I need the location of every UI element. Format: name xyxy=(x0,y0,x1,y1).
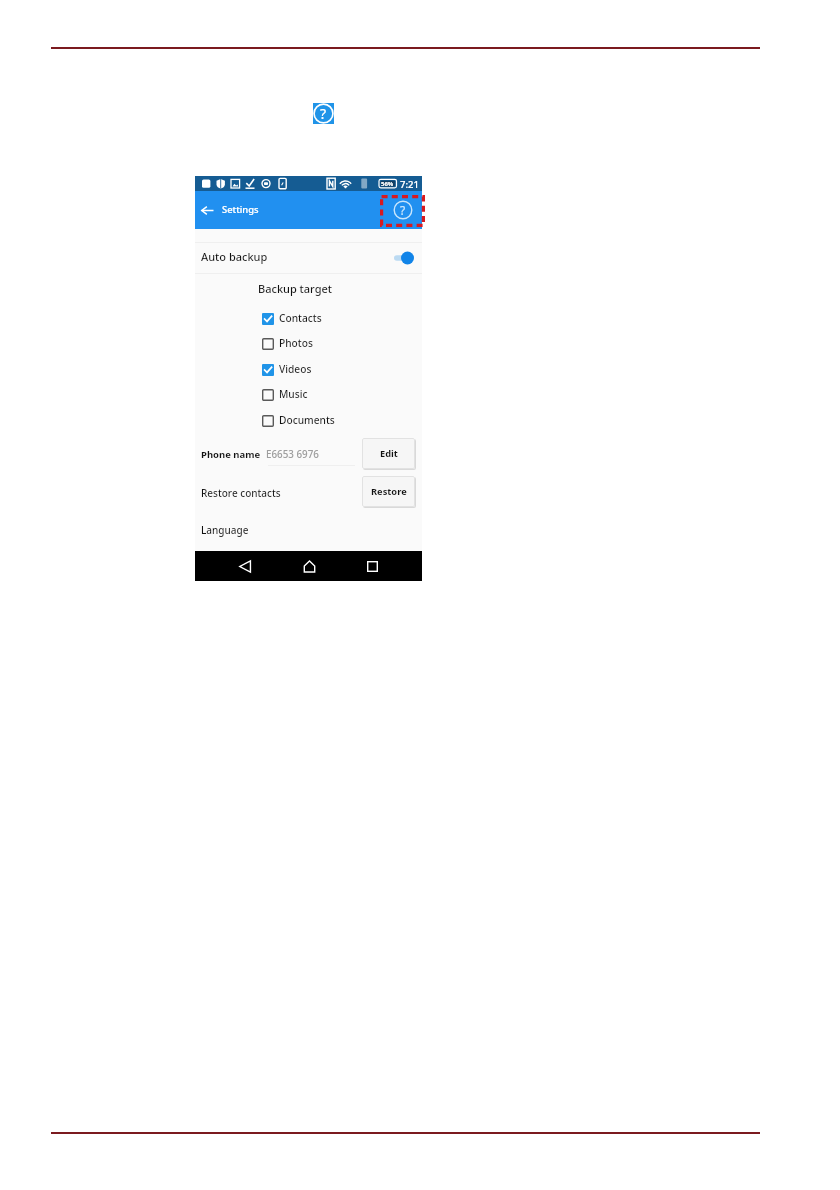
button[interactable]: Photos xyxy=(195,331,422,356)
staticText: Contacts xyxy=(279,311,322,325)
button[interactable]: Edit xyxy=(362,438,415,469)
button[interactable]: Home xyxy=(295,552,323,580)
button[interactable]: Help xyxy=(313,103,334,124)
staticText: Photos xyxy=(279,336,313,350)
staticText: Music xyxy=(279,387,308,401)
staticText: Restore xyxy=(371,485,407,498)
button[interactable]: Contacts xyxy=(195,306,422,331)
staticText: ? xyxy=(400,202,406,218)
staticText: Settings xyxy=(222,203,259,216)
button[interactable]: Restore contacts xyxy=(195,472,422,510)
staticText: E6653 6976 xyxy=(266,448,319,461)
staticText: ? xyxy=(320,104,327,123)
staticText: Language xyxy=(201,523,249,537)
staticText: Phone name xyxy=(201,448,261,461)
button[interactable]: Back xyxy=(231,552,259,580)
staticText: Restore contacts xyxy=(201,486,281,500)
button[interactable]: Navigate up xyxy=(196,199,218,221)
button[interactable]: Music xyxy=(195,382,422,407)
staticText: Backup target xyxy=(258,281,333,296)
staticText: 7:21 xyxy=(400,178,419,191)
staticText: 56% xyxy=(381,180,394,188)
button[interactable]: Recent apps xyxy=(358,552,386,580)
staticText: Edit xyxy=(380,447,398,460)
button[interactable]: Phone name xyxy=(195,434,422,472)
button[interactable]: Help xyxy=(393,200,413,220)
button[interactable]: Documents xyxy=(195,408,422,433)
button[interactable]: Auto backup xyxy=(195,241,422,271)
button[interactable]: Restore xyxy=(362,476,415,507)
staticText: Videos xyxy=(279,362,312,376)
button[interactable]: Language xyxy=(195,512,422,544)
staticText: Documents xyxy=(279,413,335,427)
staticText: Auto backup xyxy=(201,249,268,264)
button[interactable]: Videos xyxy=(195,357,422,382)
